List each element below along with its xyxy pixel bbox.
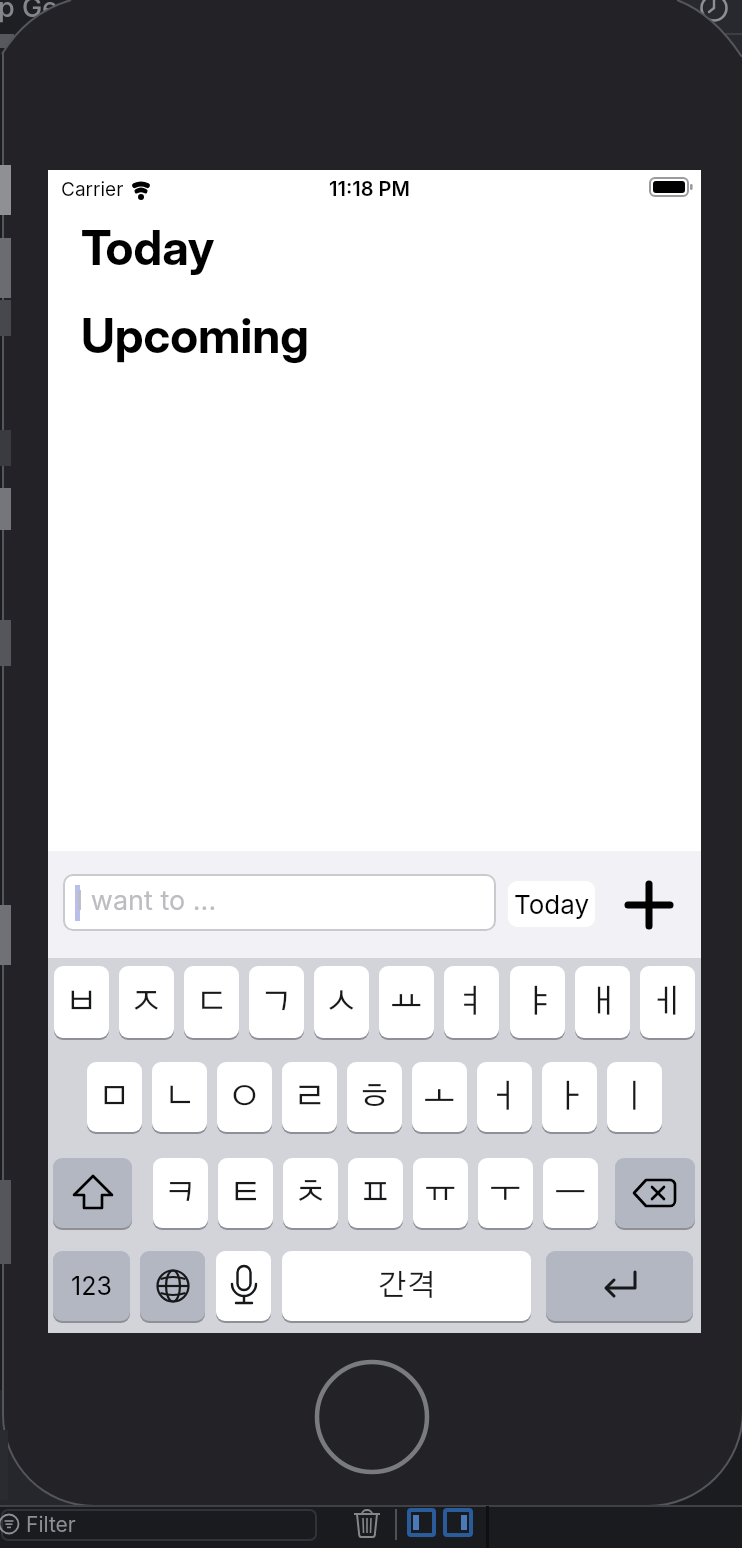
button[interactable]: ㅂ: [54, 966, 109, 1038]
staticText: ㅛ: [390, 986, 423, 1019]
button[interactable]: ㅛ: [379, 966, 434, 1038]
staticText: ㅎ: [358, 1081, 391, 1114]
staticText: ㄷ: [195, 986, 228, 1019]
staticText: Upcoming: [81, 306, 309, 364]
staticText: ㅊ: [294, 1177, 327, 1210]
button[interactable]: ㅕ: [444, 966, 499, 1038]
button[interactable]: 간격: [282, 1251, 531, 1321]
button[interactable]: I want to ...: [63, 874, 496, 931]
staticText: 11:18 PM: [329, 177, 410, 201]
button[interactable]: [443, 1508, 473, 1537]
button[interactable]: [546, 1251, 693, 1321]
staticText: Carrier: [61, 178, 124, 201]
button[interactable]: [615, 1158, 695, 1228]
staticText: ㅣ: [618, 1081, 651, 1114]
staticText: ㅑ: [521, 986, 554, 1019]
staticText: ㅈ: [130, 986, 163, 1019]
button[interactable]: ㅈ: [119, 966, 174, 1038]
button[interactable]: ㅡ: [543, 1158, 598, 1228]
button[interactable]: 123: [53, 1251, 130, 1321]
staticText: Today: [514, 889, 590, 920]
staticText: ㅋ: [164, 1177, 197, 1210]
staticText: ㅜ: [489, 1177, 522, 1210]
button[interactable]: ㅇ: [217, 1062, 272, 1132]
button[interactable]: ㅍ: [348, 1158, 403, 1228]
button[interactable]: ㅌ: [218, 1158, 273, 1228]
button[interactable]: ㅋ: [153, 1158, 208, 1228]
staticText: ㅠ: [424, 1177, 457, 1210]
button[interactable]: ㄷ: [184, 966, 239, 1038]
button[interactable]: ㅎ: [347, 1062, 402, 1132]
button[interactable]: [216, 1251, 271, 1321]
button[interactable]: ㅏ: [542, 1062, 597, 1132]
button[interactable]: ㅔ: [640, 966, 695, 1038]
staticText: ㅡ: [554, 1177, 587, 1210]
staticText: ㅓ: [488, 1081, 521, 1114]
staticText: ㅂ: [65, 986, 98, 1019]
button[interactable]: ㅊ: [283, 1158, 338, 1228]
staticText: ㅗ: [423, 1081, 456, 1114]
button[interactable]: Today: [508, 881, 595, 927]
button[interactable]: ㅐ: [575, 966, 630, 1038]
staticText: ㅏ: [553, 1081, 586, 1114]
staticText: ㅅ: [325, 986, 358, 1019]
staticText: Today: [81, 218, 215, 276]
button[interactable]: [407, 1508, 436, 1537]
staticText: ㅐ: [586, 986, 619, 1019]
button[interactable]: ㅑ: [510, 966, 565, 1038]
button[interactable]: [626, 882, 672, 928]
button[interactable]: ㄹ: [282, 1062, 337, 1132]
staticText: ㄴ: [163, 1081, 196, 1114]
staticText: I want to ...: [76, 884, 217, 917]
staticText: 123: [71, 1271, 112, 1301]
staticText: ㅍ: [359, 1177, 392, 1210]
button[interactable]: ㅅ: [314, 966, 369, 1038]
staticText: ㄱ: [260, 986, 293, 1019]
staticText: ㅇ: [228, 1081, 261, 1114]
staticText: ㅌ: [229, 1177, 262, 1210]
staticText: Filter: [26, 1512, 76, 1537]
button[interactable]: [53, 1158, 132, 1228]
staticText: p Ges: [0, 0, 73, 24]
button[interactable]: ㅣ: [607, 1062, 662, 1132]
button[interactable]: ㄴ: [152, 1062, 207, 1132]
button[interactable]: [140, 1251, 205, 1321]
staticText: ㅕ: [455, 986, 488, 1019]
button[interactable]: [1, 1509, 317, 1541]
button[interactable]: ㄱ: [249, 966, 304, 1038]
staticText: ㅁ: [98, 1081, 131, 1114]
staticText: ㅔ: [651, 986, 684, 1019]
staticText: ㄹ: [293, 1081, 326, 1114]
button[interactable]: ㅗ: [412, 1062, 467, 1132]
staticText: 간격: [378, 1271, 436, 1301]
button[interactable]: ㅠ: [413, 1158, 468, 1228]
button[interactable]: ㅜ: [478, 1158, 533, 1228]
button[interactable]: ㅓ: [477, 1062, 532, 1132]
button[interactable]: ㅁ: [87, 1062, 142, 1132]
